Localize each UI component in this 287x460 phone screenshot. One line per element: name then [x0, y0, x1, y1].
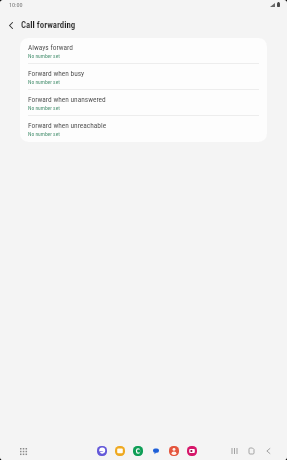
button[interactable]: Navigate up [1, 15, 21, 35]
staticText: Forward when unanswered [28, 95, 106, 104]
button[interactable]: Forward when unanswered [20, 90, 267, 116]
staticText: 10:00 [9, 1, 23, 8]
button[interactable]: Home [244, 444, 258, 458]
staticText: No number set [28, 53, 60, 59]
button[interactable]: Back [261, 444, 275, 458]
button[interactable]: Gallery [187, 446, 197, 456]
staticText: Forward when unreachable [28, 121, 107, 130]
staticText: Forward when busy [28, 69, 85, 78]
button[interactable]: Messages [151, 446, 161, 456]
staticText: Always forward [28, 43, 73, 52]
button[interactable]: Recents [227, 444, 241, 458]
staticText: No number set [28, 131, 60, 137]
staticText: Call forwarding [21, 20, 76, 30]
staticText: No number set [28, 105, 60, 111]
button[interactable]: Calculator [133, 446, 143, 456]
button[interactable]: Always forward [20, 38, 267, 64]
button[interactable]: Contacts [169, 446, 179, 456]
button[interactable]: Apps [14, 442, 32, 460]
button[interactable]: Forward when busy [20, 64, 267, 90]
button[interactable]: Forward when unreachable [20, 116, 267, 142]
staticText: No number set [28, 79, 60, 85]
button[interactable]: My Files [115, 446, 125, 456]
button[interactable]: Internet [97, 446, 107, 456]
